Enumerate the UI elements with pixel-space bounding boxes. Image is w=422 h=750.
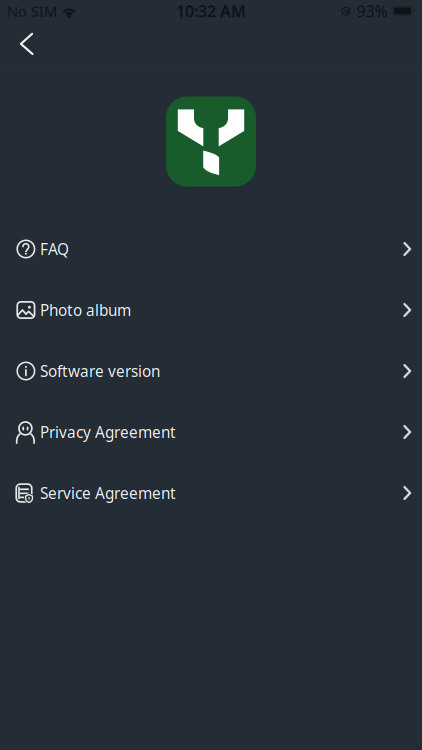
staticText: Service Agreement (40, 483, 176, 503)
staticText: 10:32 AM (176, 0, 246, 22)
staticText: Privacy Agreement (40, 422, 176, 442)
staticText: Software version (40, 361, 160, 381)
staticText: No SIM (7, 1, 57, 21)
button[interactable]: Service Agreement (0, 462, 422, 523)
button[interactable]: Software version (0, 340, 422, 401)
staticText: Photo album (40, 300, 131, 320)
button[interactable]: Photo album (0, 279, 422, 340)
staticText: FAQ (40, 239, 69, 259)
button[interactable]: Privacy Agreement (0, 401, 422, 462)
staticText: 93% (356, 0, 387, 22)
button[interactable]: Back (0, 22, 44, 65)
button[interactable]: FAQ (0, 218, 422, 279)
